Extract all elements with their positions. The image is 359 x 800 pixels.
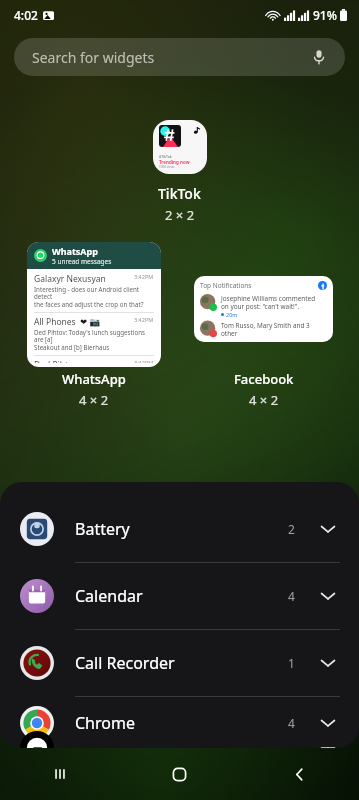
staticText: Ded Pihtov <box>34 359 78 363</box>
button[interactable]: Call Recorder <box>0 630 359 696</box>
staticText: Trending now <box>159 159 190 165</box>
button[interactable]: Recent apps <box>0 748 119 800</box>
staticText: 4 × 2 <box>79 391 109 409</box>
button[interactable]: Home <box>119 748 239 800</box>
staticText: 1 <box>288 655 295 671</box>
button[interactable]: Top Notifications <box>194 276 333 342</box>
staticText: Galaxyr Nexusyan <box>34 273 106 285</box>
button[interactable]: Chrome <box>0 697 359 748</box>
staticText: 4:02 <box>14 7 38 23</box>
staticText: 2 × 2 <box>165 206 195 224</box>
staticText: 3:42PM <box>134 359 154 363</box>
staticText: 4 × 2 <box>249 391 279 409</box>
staticText: Call Recorder <box>75 652 175 674</box>
button[interactable]: WhatsApp <box>27 242 161 367</box>
staticText: #TikTok <box>159 154 172 159</box>
staticText: Calendar <box>75 585 143 607</box>
button[interactable]: Battery <box>0 496 359 562</box>
staticText: 20m <box>226 311 238 318</box>
staticText: 2 <box>288 521 295 537</box>
staticText: Top Notifications <box>200 281 252 290</box>
staticText: Tom Russo, Mary Smith and 3 other people… <box>221 321 327 337</box>
button[interactable]: Back <box>239 748 359 800</box>
staticText: All Phones ❤ 📷 <box>34 316 101 328</box>
staticText: WhatsApp <box>52 245 98 257</box>
staticText: Interesting - does our Android client de… <box>34 285 154 309</box>
staticText: Josephine Williams commented on your pos… <box>221 294 316 311</box>
staticText: 4 <box>288 588 295 604</box>
staticText: WhatsApp <box>62 370 126 388</box>
staticText: Ded Pihtov: Today's lunch suggestions ar… <box>34 328 154 352</box>
staticText: Battery <box>75 518 130 540</box>
staticText: Facebook <box>234 370 294 388</box>
staticText: Search for widgets <box>32 48 155 67</box>
staticText: 100K views <box>159 165 175 169</box>
staticText: 91% <box>313 7 337 23</box>
staticText: TikTok <box>158 184 201 203</box>
staticText: 4 <box>288 715 295 731</box>
button[interactable]: #TikTok <box>153 120 207 174</box>
staticText: Chrome <box>75 712 135 734</box>
staticText: 5 unread messages <box>52 257 112 266</box>
staticText: 3:42PM <box>134 316 154 323</box>
staticText: 3:42PM <box>134 273 154 280</box>
button[interactable]: Search for widgets <box>14 38 345 76</box>
button[interactable]: Calendar <box>0 563 359 629</box>
other: Voice search <box>311 49 327 65</box>
